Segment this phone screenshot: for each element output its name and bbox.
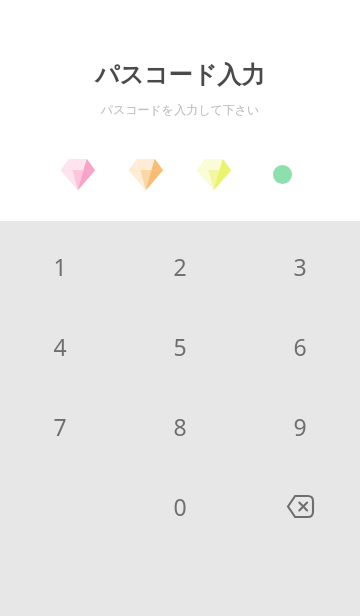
staticText: 2	[173, 251, 187, 282]
staticText: 9	[293, 411, 307, 442]
staticText: 6	[293, 331, 307, 362]
button[interactable]: Delete	[240, 466, 360, 546]
staticText: 0	[173, 491, 187, 522]
staticText: 4	[53, 331, 67, 362]
button[interactable]: 0	[120, 466, 240, 546]
button[interactable]: 1	[0, 226, 120, 306]
button[interactable]: 8	[120, 386, 240, 466]
button[interactable]: 2	[120, 226, 240, 306]
button[interactable]: 5	[120, 306, 240, 386]
staticText: 3	[293, 251, 307, 282]
staticText: パスコードを入力して下さい	[0, 102, 360, 117]
button[interactable]: 3	[240, 226, 360, 306]
staticText: 1	[53, 251, 67, 282]
button[interactable]: 6	[240, 306, 360, 386]
button[interactable]: 9	[240, 386, 360, 466]
staticText: 5	[173, 331, 187, 362]
staticText: 7	[53, 411, 67, 442]
button[interactable]: 4	[0, 306, 120, 386]
button[interactable]: 7	[0, 386, 120, 466]
staticText: パスコード入力	[0, 60, 360, 90]
staticText: 8	[173, 411, 187, 442]
